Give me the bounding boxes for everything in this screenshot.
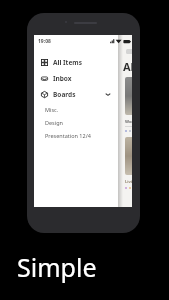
staticText: Living [125,179,132,185]
staticText: Boards [53,90,76,99]
button[interactable]: Inbox [34,70,118,86]
staticText: Design [45,119,63,126]
button[interactable]: Design [34,116,118,129]
staticText: Work [125,119,132,125]
button[interactable]: Misc. [34,103,118,116]
staticText: Misc. [45,106,59,113]
staticText: Presentation 12/4 [45,132,91,139]
button[interactable]: Presentation 12/4 [34,129,118,142]
button[interactable]: Boards [34,86,118,102]
button[interactable]: All Items [34,54,118,70]
staticText: All Items [123,59,132,74]
staticText: 19:08 [38,38,51,45]
staticText: Simple [17,250,97,284]
staticText: Inbox [53,74,72,83]
staticText: All Items [53,58,82,67]
